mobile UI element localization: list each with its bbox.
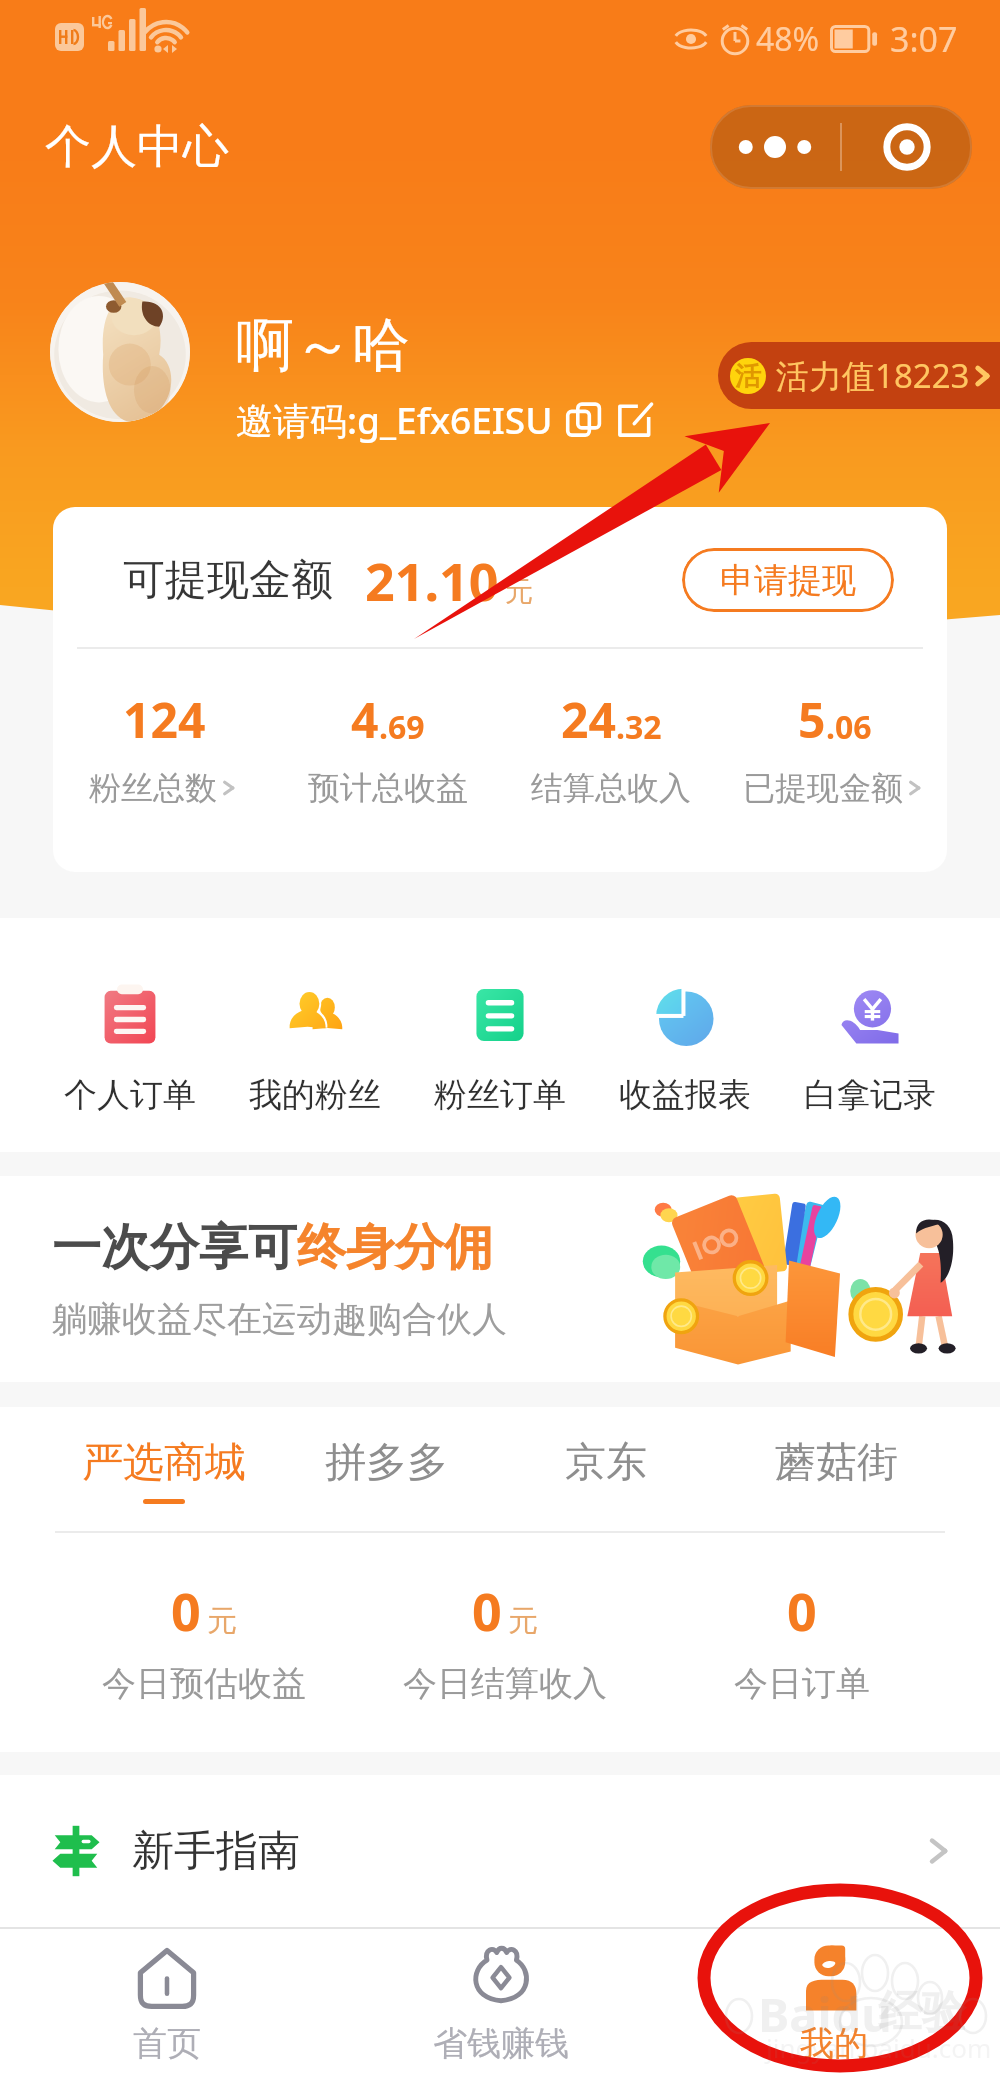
- staticText: 124: [123, 687, 206, 752]
- button[interactable]: 严选商城: [44, 1437, 284, 1504]
- staticText: 经验: [878, 1985, 966, 2040]
- staticText: 新手指南: [132, 1825, 300, 1878]
- button[interactable]: 5: [723, 687, 947, 808]
- staticText: 个人订单: [64, 1074, 196, 1116]
- button[interactable]: 0: [652, 1575, 952, 1705]
- staticText: 京东: [565, 1437, 647, 1489]
- staticText: Baidu: [758, 1982, 892, 2046]
- staticText: 今日预估收益: [102, 1662, 306, 1705]
- staticText: 3:07: [890, 16, 958, 62]
- staticText: 48%: [756, 17, 820, 61]
- staticText: 24: [561, 687, 616, 752]
- staticText: 首页: [133, 2022, 201, 2065]
- staticText: 我的: [800, 2022, 868, 2065]
- staticText: 5: [798, 687, 826, 752]
- button[interactable]: 4: [276, 687, 499, 808]
- staticText: 邀请码:g_Efx6EISU: [236, 394, 553, 445]
- staticText: 粉丝总数: [89, 768, 217, 808]
- button[interactable]: 省钱赚钱: [334, 1929, 667, 2078]
- staticText: 已提现金额: [743, 768, 903, 808]
- staticText: 今日结算收入: [403, 1662, 607, 1705]
- button[interactable]: 我的粉丝: [223, 918, 407, 1152]
- staticText: 终身分佣: [297, 1217, 493, 1279]
- staticText: 元: [505, 574, 533, 609]
- staticText: 一次分享可: [52, 1217, 297, 1279]
- staticText: 可提现金额: [123, 554, 333, 607]
- staticText: 收益报表: [619, 1074, 751, 1116]
- button[interactable]: 一次分享可: [0, 1176, 1000, 1382]
- staticText: 元: [508, 1602, 538, 1640]
- button[interactable]: 拼多多: [266, 1437, 506, 1499]
- button[interactable]: 个人订单: [38, 918, 222, 1152]
- staticText: 4: [351, 687, 379, 752]
- staticText: 躺赚收益尽在运动趣购合伙人: [52, 1297, 507, 1341]
- staticText: 21.10: [365, 545, 499, 615]
- button[interactable]: 0: [355, 1575, 655, 1705]
- staticText: 蘑菇街: [775, 1437, 898, 1489]
- button[interactable]: 首页: [0, 1929, 334, 2078]
- staticText: 白拿记录: [804, 1074, 936, 1116]
- staticText: .32: [616, 705, 662, 749]
- button[interactable]: 收益报表: [593, 918, 777, 1152]
- staticText: 个人中心: [45, 118, 229, 176]
- staticText: 结算总收入: [531, 768, 691, 808]
- button[interactable]: 24: [499, 687, 723, 808]
- staticText: 省钱赚钱: [433, 2022, 569, 2065]
- button[interactable]: 124: [53, 687, 276, 808]
- staticText: .06: [826, 705, 872, 749]
- staticText: 0: [472, 1575, 502, 1646]
- button[interactable]: 活: [730, 342, 996, 409]
- staticText: 啊～哈: [236, 309, 410, 382]
- button[interactable]: 新手指南: [0, 1775, 1000, 1927]
- button[interactable]: 京东: [486, 1437, 726, 1499]
- button[interactable]: 粉丝订单: [408, 918, 592, 1152]
- staticText: jingyan.baidu.com: [766, 2030, 992, 2065]
- button[interactable]: 蘑菇街: [716, 1437, 956, 1499]
- staticText: 严选商城: [82, 1437, 246, 1489]
- button[interactable]: 0: [54, 1575, 354, 1705]
- button[interactable]: Copy invite code: [567, 402, 603, 438]
- staticText: 今日订单: [734, 1662, 870, 1705]
- staticText: 活力值18223: [776, 353, 970, 398]
- button[interactable]: 申请提现: [682, 548, 894, 612]
- button[interactable]: 白拿记录: [778, 918, 962, 1152]
- staticText: 预计总收益: [308, 768, 468, 808]
- button[interactable]: Profile avatar: [50, 282, 190, 422]
- button[interactable]: More options and close: [710, 105, 972, 189]
- staticText: .69: [379, 705, 425, 749]
- staticText: 元: [207, 1602, 237, 1640]
- staticText: 0: [787, 1575, 817, 1646]
- staticText: 拼多多: [325, 1437, 448, 1489]
- staticText: 申请提现: [720, 559, 856, 602]
- staticText: 0: [171, 1575, 201, 1646]
- staticText: 粉丝订单: [434, 1074, 566, 1116]
- button[interactable]: Edit profile: [617, 402, 653, 438]
- staticText: 我的粉丝: [249, 1074, 381, 1116]
- staticText: 活: [735, 360, 761, 393]
- button[interactable]: 我的: [667, 1929, 1000, 2078]
